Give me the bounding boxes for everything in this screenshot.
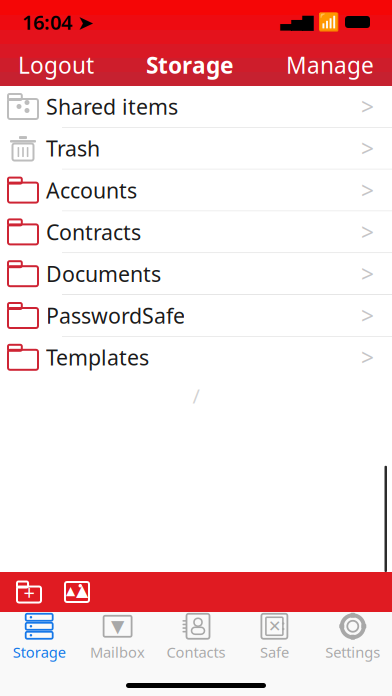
staticText: > — [361, 175, 374, 205]
staticText: / — [192, 382, 199, 409]
staticText: Settings — [325, 642, 380, 662]
button[interactable]: Templates — [0, 337, 392, 378]
staticText: Templates — [46, 343, 149, 371]
staticText: + — [23, 579, 34, 605]
staticText: Storage — [13, 642, 66, 662]
staticText: Storage — [146, 50, 234, 80]
button[interactable]: ✕ — [235, 613, 314, 661]
staticText: 📶 — [318, 12, 340, 32]
staticText: > — [361, 342, 374, 372]
button[interactable]: Add photo — [60, 573, 94, 611]
button[interactable]: ▼ — [78, 613, 157, 661]
staticText: Trash — [46, 134, 100, 162]
button[interactable]: New folder — [12, 573, 46, 611]
staticText: PasswordSafe — [46, 301, 185, 330]
button[interactable]: Storage — [0, 613, 78, 661]
staticText: > — [361, 133, 374, 163]
staticText: > — [361, 300, 374, 330]
staticText: ✕ — [268, 617, 281, 635]
staticText: Shared items — [46, 92, 178, 121]
staticText: Contracts — [46, 218, 141, 246]
button[interactable]: Manage — [268, 44, 392, 86]
staticText: ▲ — [66, 584, 75, 597]
staticText: 16:04 ➤ — [22, 9, 94, 35]
staticText: ▲ — [76, 581, 88, 600]
button[interactable]: Trash — [0, 128, 392, 170]
button[interactable]: PasswordSafe — [0, 295, 392, 337]
staticText: > — [361, 91, 374, 121]
button[interactable]: Accounts — [0, 170, 392, 211]
button[interactable]: Contracts — [0, 211, 392, 253]
button[interactable]: Documents — [0, 253, 392, 295]
staticText: Mailbox — [90, 642, 145, 662]
staticText: Accounts — [46, 176, 137, 204]
staticText: Safe — [260, 642, 289, 662]
staticText: Logout — [18, 50, 94, 80]
staticText: Documents — [46, 259, 161, 288]
button[interactable]: Settings — [314, 613, 392, 661]
staticText: > — [361, 259, 374, 289]
staticText: ▃▅▇ — [280, 14, 313, 30]
button[interactable]: Contacts — [157, 613, 235, 661]
staticText: > — [361, 217, 374, 247]
button[interactable]: Shared items — [0, 86, 392, 128]
button[interactable]: Logout — [0, 44, 112, 86]
staticText: Manage — [286, 50, 374, 80]
staticText: ▼ — [111, 616, 124, 636]
staticText: Contacts — [166, 642, 225, 662]
